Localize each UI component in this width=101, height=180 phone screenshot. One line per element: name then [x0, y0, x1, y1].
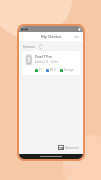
button[interactable]: Pixel 7 Pro: [22, 51, 80, 75]
staticText: Storage: [64, 68, 74, 72]
staticText: My Device: [41, 34, 62, 40]
button[interactable]: Storage: [60, 68, 77, 72]
button[interactable]: More options: [73, 35, 80, 39]
button[interactable]: Refresh: [38, 44, 43, 49]
staticText: Pixel 7 Pro: [35, 54, 52, 59]
staticText: 81: [39, 68, 42, 72]
staticText: Devices: [23, 44, 36, 49]
button[interactable]: 81: [35, 68, 46, 72]
button[interactable]: Wi-Fi: [46, 68, 60, 72]
staticText: Android 14 · Online: [35, 60, 59, 64]
staticText: Watermark: [65, 146, 79, 150]
staticText: Wi-Fi: [50, 68, 56, 72]
